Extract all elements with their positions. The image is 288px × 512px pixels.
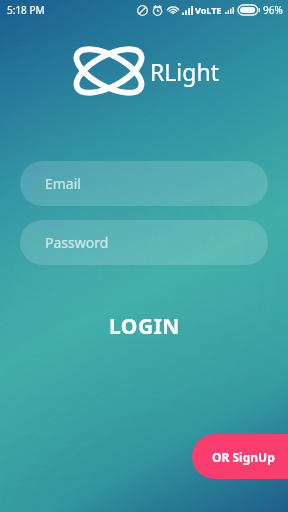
button[interactable]: OR SignUp [192, 434, 288, 479]
staticText: RLight [150, 56, 219, 87]
staticText: 5:18 PM [7, 3, 45, 17]
staticText: VoLTE [195, 4, 222, 16]
staticText: Password [45, 233, 109, 252]
staticText: LOGIN [109, 312, 180, 341]
button[interactable]: LOGIN [0, 309, 288, 343]
button[interactable]: Email [20, 161, 268, 206]
staticText: 96% [263, 3, 283, 17]
staticText: Email [45, 174, 81, 193]
staticText: OR SignUp [212, 449, 275, 465]
button[interactable]: Password [20, 220, 268, 265]
